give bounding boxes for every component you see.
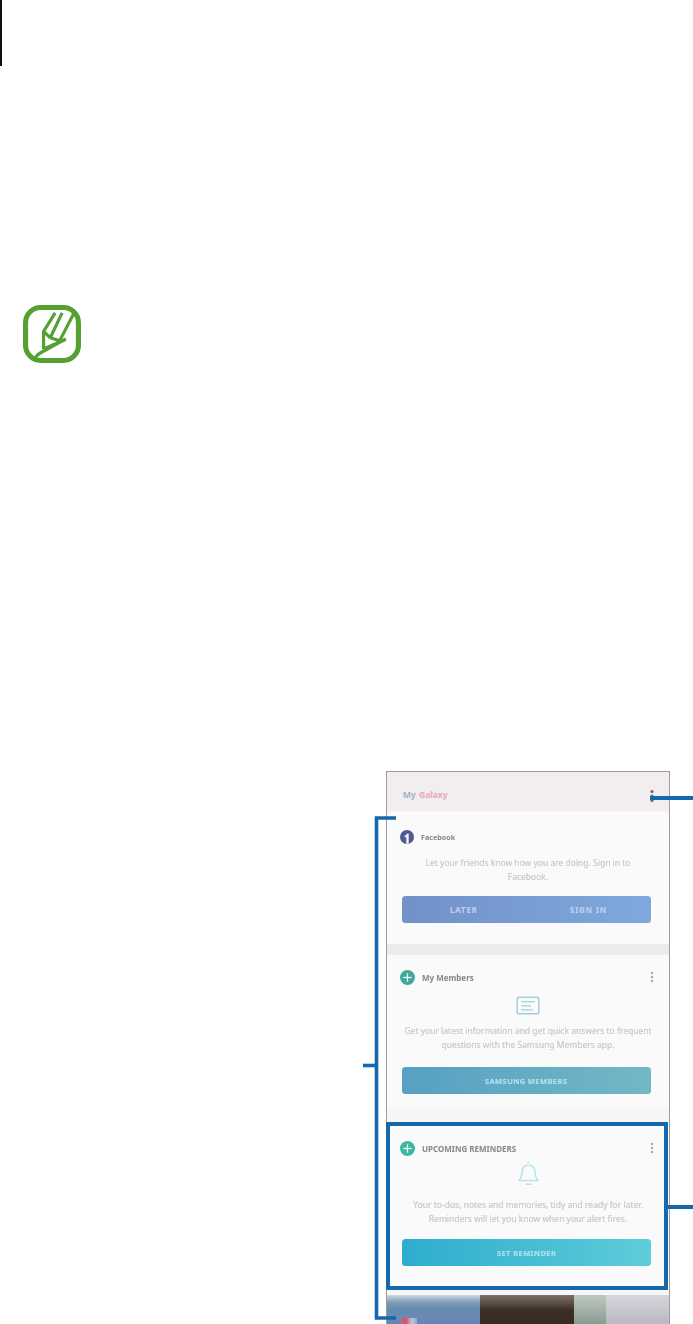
staticText: SIGN IN [570,904,608,915]
button[interactable]: SAMSUNG MEMBERS [402,1067,651,1094]
button[interactable]: My Members [387,955,669,1107]
button[interactable]: Facebook [387,812,669,944]
button[interactable]: More options [642,786,662,806]
staticText: My [403,789,416,801]
staticText: Your to-dos, notes and memories, tidy an… [398,1199,658,1224]
button[interactable]: SIGN IN [526,896,651,923]
staticText: SAMSUNG MEMBERS [485,1076,568,1086]
staticText: UPCOMING REMINDERS [422,1143,517,1154]
button[interactable]: LATER [402,896,526,923]
staticText: My Members [422,972,474,983]
staticText: SET REMINDER [497,1248,557,1258]
button[interactable]: UPCOMING REMINDERS [387,1125,669,1289]
button[interactable]: Card options [644,1140,660,1156]
staticText: Facebook [421,832,456,842]
button[interactable]: Card options [644,969,660,985]
staticText: Galaxy [419,789,448,801]
button[interactable]: SET REMINDER [402,1239,651,1266]
staticText: Let your friends know how you are doing.… [398,857,658,882]
staticText: LATER [450,904,478,915]
staticText: Get your latest information and get quic… [398,1025,658,1050]
